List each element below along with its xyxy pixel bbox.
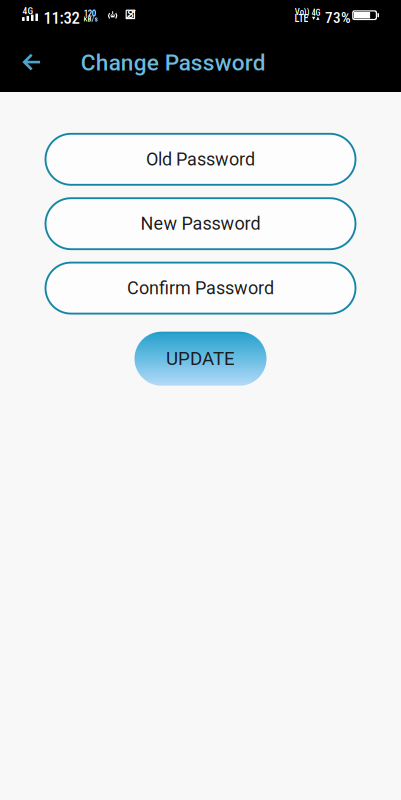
staticText: 4G (312, 8, 321, 18)
button[interactable]: Back (7, 38, 55, 86)
button[interactable]: UPDATE (134, 332, 266, 386)
staticText: 4G (22, 5, 33, 17)
staticText: LTE (294, 13, 308, 25)
staticText: Vo)) (295, 7, 310, 17)
staticText: S (127, 8, 133, 20)
staticText: 120 (84, 8, 96, 19)
staticText: Change Password (81, 49, 266, 76)
staticText: 73% (325, 9, 351, 27)
staticText: KB/s (84, 15, 98, 23)
staticText: 11:32 (44, 8, 80, 28)
staticText: Confirm Password (127, 278, 274, 299)
staticText: New Password (140, 213, 260, 234)
staticText: Old Password (146, 149, 255, 170)
staticText: UPDATE (166, 348, 235, 370)
